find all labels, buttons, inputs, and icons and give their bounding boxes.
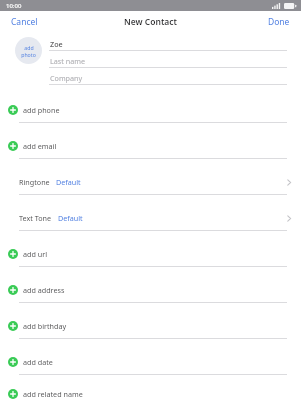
- staticText: Zoe: [50, 39, 63, 49]
- button[interactable]: Last name: [49, 54, 301, 68]
- staticText: Done: [268, 16, 290, 28]
- button[interactable]: Add photo: [15, 37, 42, 64]
- button[interactable]: Company: [49, 71, 301, 85]
- staticText: Cancel: [11, 16, 38, 28]
- staticText: add url: [23, 249, 48, 259]
- staticText: Company: [50, 73, 83, 83]
- button[interactable]: add date: [0, 350, 301, 375]
- button[interactable]: Done: [257, 11, 301, 33]
- staticText: add date: [23, 357, 53, 367]
- staticText: Default: [56, 177, 81, 187]
- staticText: add address: [23, 285, 65, 295]
- button[interactable]: add phone: [0, 98, 301, 123]
- staticText: 10:00: [6, 2, 22, 10]
- staticText: New Contact: [124, 16, 178, 28]
- button[interactable]: Ringtone: [0, 170, 301, 195]
- button[interactable]: add url: [0, 242, 301, 267]
- button[interactable]: Cancel: [0, 11, 49, 33]
- button[interactable]: add address: [0, 278, 301, 303]
- staticText: add: [24, 44, 34, 51]
- button[interactable]: add related name: [0, 386, 301, 402]
- button[interactable]: add email: [0, 134, 301, 159]
- staticText: add phone: [23, 105, 60, 115]
- button[interactable]: Text Tone: [0, 206, 301, 231]
- staticText: add birthday: [23, 321, 67, 331]
- staticText: Text Tone: [19, 213, 52, 223]
- staticText: add related name: [23, 389, 83, 399]
- staticText: Ringtone: [19, 177, 50, 187]
- staticText: Last name: [50, 56, 85, 66]
- button[interactable]: add birthday: [0, 314, 301, 339]
- staticText: photo: [21, 51, 36, 58]
- staticText: add email: [23, 141, 57, 151]
- button[interactable]: Zoe: [49, 37, 301, 51]
- staticText: Default: [58, 213, 83, 223]
